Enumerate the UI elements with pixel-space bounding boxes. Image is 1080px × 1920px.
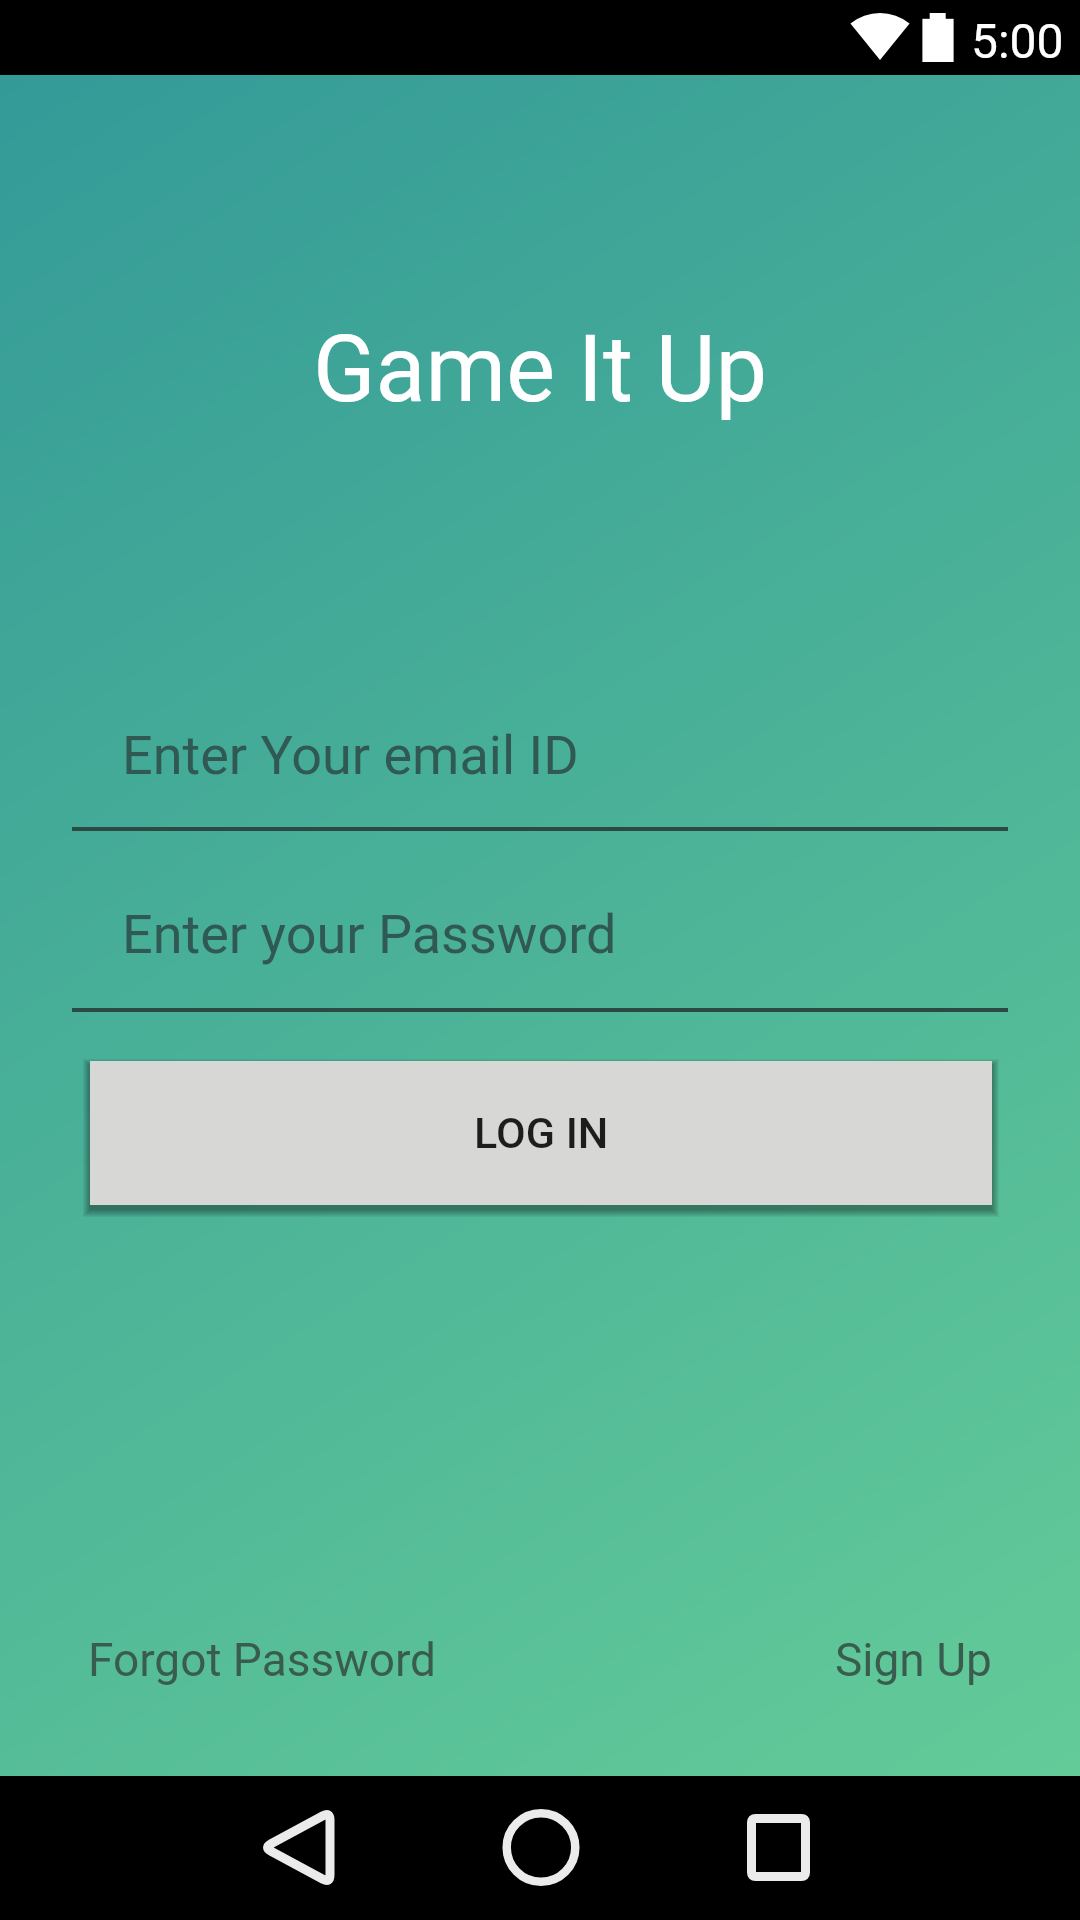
button[interactable]: Sign Up — [835, 1633, 992, 1687]
button[interactable]: Forgot Password — [88, 1633, 437, 1687]
staticText: LOG IN — [474, 1108, 609, 1158]
button[interactable] — [0, 1776, 360, 1920]
staticText: Game It Up — [0, 316, 1080, 424]
button[interactable] — [720, 1776, 1080, 1920]
staticText: Enter your Password — [122, 903, 617, 966]
staticText: 5:00 — [971, 13, 1064, 69]
staticText: Enter Your email ID — [122, 724, 579, 787]
button[interactable] — [72, 695, 1008, 831]
button[interactable] — [360, 1776, 720, 1920]
button[interactable]: LOG IN — [90, 1061, 992, 1205]
button[interactable] — [72, 875, 1008, 1012]
